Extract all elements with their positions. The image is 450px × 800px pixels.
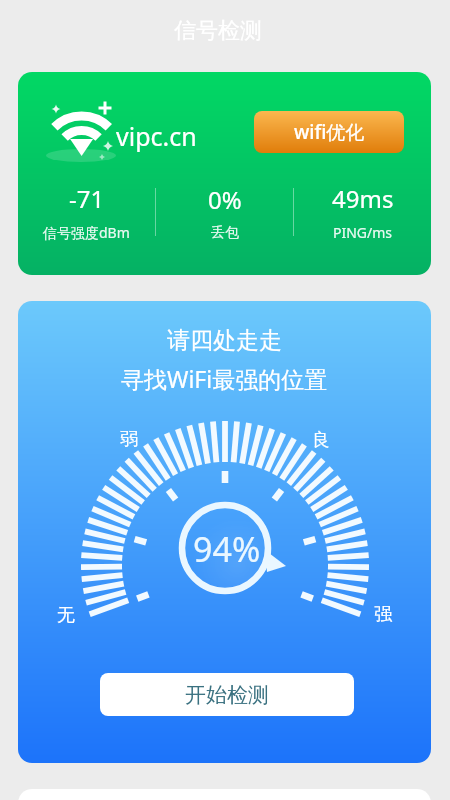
staticText: 信号检测 xyxy=(174,17,262,43)
staticText: 良 xyxy=(312,429,330,452)
staticText: wifi优化 xyxy=(294,119,365,145)
staticText: 49ms xyxy=(332,182,394,215)
staticText: PING/ms xyxy=(333,223,393,242)
staticText: 请四处走走 xyxy=(167,326,282,355)
button[interactable]: wifi优化 xyxy=(254,111,404,153)
staticText: 0% xyxy=(208,183,242,216)
staticText: 开始检测 xyxy=(185,682,269,708)
staticText: 94% xyxy=(193,526,261,572)
staticText: -71 xyxy=(69,182,105,215)
staticText: 丢包 xyxy=(211,224,239,242)
staticText: 信号强度dBm xyxy=(43,223,130,242)
staticText: 寻找WiFi最强的位置 xyxy=(121,363,328,394)
button[interactable]: 信号检测 xyxy=(174,17,262,43)
staticText: vipc.cn xyxy=(116,119,197,153)
staticText: 强 xyxy=(374,603,392,626)
staticText: 无 xyxy=(57,604,75,627)
button[interactable]: 开始检测 xyxy=(100,673,354,716)
staticText: 弱 xyxy=(120,428,138,451)
